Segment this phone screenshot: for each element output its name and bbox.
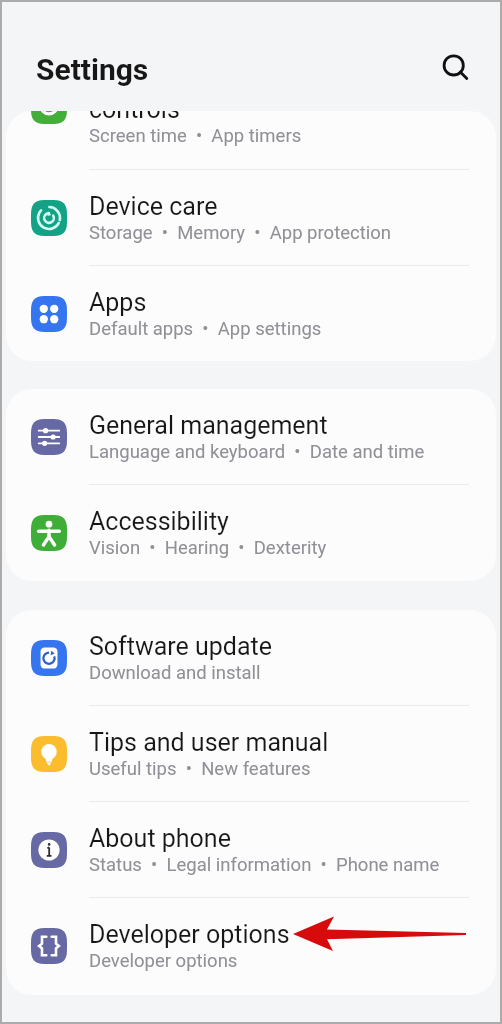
staticText: Screen time • App timers: [89, 125, 302, 147]
staticText: Software update: [89, 632, 273, 661]
button[interactable]: Device care: [6, 170, 496, 266]
button[interactable]: Accessibility: [6, 485, 496, 581]
staticText: Digital Wellbeing and parental controls: [89, 111, 419, 124]
button[interactable]: Software update: [6, 610, 496, 706]
staticText: Developer options: [89, 920, 290, 949]
button[interactable]: Developer options: [6, 898, 496, 994]
staticText: Useful tips • New features: [89, 758, 311, 780]
staticText: Device care: [89, 192, 218, 221]
button[interactable]: Digital Wellbeing and parental controls: [6, 111, 496, 170]
staticText: Settings: [36, 52, 149, 87]
staticText: Status • Legal information • Phone name: [89, 854, 440, 876]
staticText: Language and keyboard • Date and time: [89, 441, 425, 463]
button[interactable]: Search: [430, 42, 482, 94]
staticText: Accessibility: [89, 507, 229, 536]
button[interactable]: General management: [6, 389, 496, 485]
staticText: General management: [89, 411, 328, 440]
staticText: Tips and user manual: [89, 728, 329, 757]
staticText: About phone: [89, 824, 231, 853]
staticText: Download and install: [89, 662, 261, 684]
staticText: Apps: [89, 288, 147, 317]
button[interactable]: About phone: [6, 802, 496, 898]
staticText: Storage • Memory • App protection: [89, 222, 392, 244]
staticText: Vision • Hearing • Dexterity: [89, 537, 327, 559]
staticText: Default apps • App settings: [89, 318, 322, 340]
staticText: Developer options: [89, 950, 238, 972]
button[interactable]: Tips and user manual: [6, 706, 496, 802]
button[interactable]: Apps: [6, 266, 496, 361]
